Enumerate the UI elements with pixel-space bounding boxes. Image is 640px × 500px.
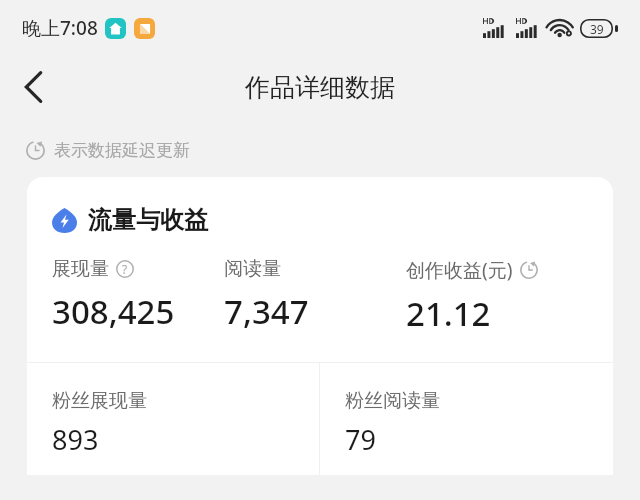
staticText: 作品详细数据	[245, 72, 395, 103]
staticText: ?	[122, 261, 128, 277]
button[interactable]: 展现量	[52, 257, 224, 334]
button[interactable]: Back	[8, 62, 58, 112]
staticText: 阅读量	[224, 257, 281, 281]
button[interactable]: 创作收益(元)	[406, 257, 613, 336]
staticText: 粉丝阅读量	[345, 389, 440, 413]
staticText: 展现量	[52, 257, 109, 281]
staticText: 21.12	[406, 291, 491, 336]
button[interactable]: 流量与收益	[52, 205, 613, 235]
staticText: 表示数据延迟更新	[54, 140, 190, 161]
staticText: 流量与收益	[88, 205, 208, 235]
staticText: 893	[52, 421, 99, 458]
staticText: 7,347	[224, 289, 309, 334]
staticText: 创作收益(元)	[406, 257, 513, 283]
staticText: 79	[345, 421, 376, 458]
staticText: 39	[590, 21, 604, 37]
staticText: 308,425	[52, 289, 175, 334]
button[interactable]: 阅读量	[224, 257, 406, 334]
staticText: 晚上7:08	[22, 15, 98, 41]
staticText: 粉丝展现量	[52, 389, 147, 413]
